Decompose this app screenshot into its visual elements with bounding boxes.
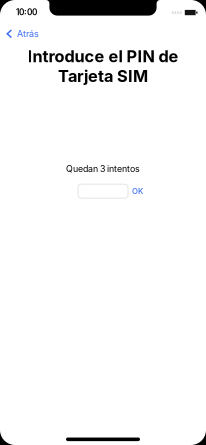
staticText: Quedan 3 intentos [66, 163, 140, 174]
staticText: OK [132, 186, 143, 196]
button[interactable]: OK [128, 184, 146, 198]
staticText: Tarjeta SIM [58, 66, 148, 86]
button[interactable]: Atrás [0, 24, 47, 43]
staticText: Introduce el PIN de [27, 46, 178, 66]
staticText: 10:00 [16, 7, 37, 17]
staticText: Atrás [17, 28, 39, 39]
